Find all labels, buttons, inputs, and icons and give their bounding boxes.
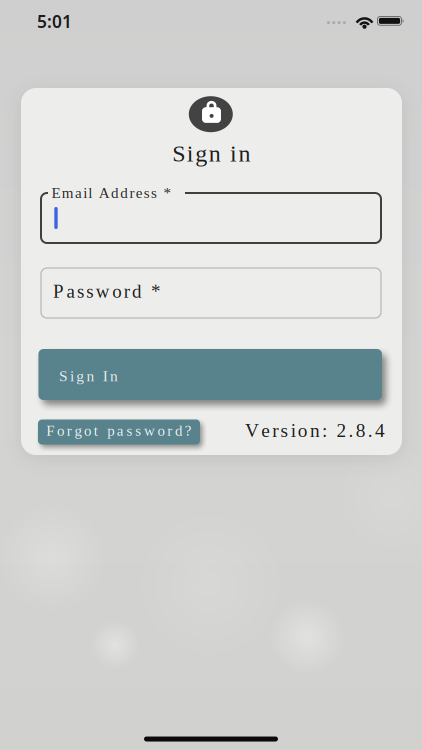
staticText: s [86, 281, 93, 302]
staticText: e [136, 185, 143, 201]
staticText: s [280, 420, 288, 441]
staticText: i [187, 140, 194, 167]
staticText: n [110, 367, 118, 384]
staticText: o [298, 420, 308, 441]
staticText: s [126, 422, 132, 439]
staticText: l [88, 185, 92, 201]
staticText: S [172, 140, 185, 167]
staticText: p [107, 422, 114, 439]
staticText: o [57, 422, 64, 439]
staticText: 4 [375, 420, 385, 441]
staticText: n [310, 420, 320, 441]
staticText: e [261, 420, 270, 441]
staticText: r [124, 281, 130, 302]
button[interactable]: S [38, 349, 382, 400]
button[interactable]: E [41, 193, 381, 243]
staticText: w [96, 281, 110, 302]
staticText: d [175, 422, 182, 439]
staticText: a [66, 281, 74, 302]
staticText: A [99, 185, 110, 201]
staticText: I [103, 367, 108, 384]
staticText: d [132, 281, 141, 302]
button[interactable]: F [38, 419, 200, 444]
staticText: 8 [356, 420, 366, 441]
staticText: r [129, 185, 134, 201]
staticText: d [120, 185, 128, 201]
staticText: * [151, 281, 160, 302]
staticText: F [46, 422, 54, 439]
staticText: S [59, 367, 68, 384]
staticText: s [77, 281, 84, 302]
staticText: s [144, 185, 150, 201]
staticText: i [230, 140, 237, 167]
staticText: P [53, 281, 64, 302]
staticText: r [272, 420, 278, 441]
staticText: g [76, 367, 84, 384]
staticText: o [112, 281, 121, 302]
staticText: n [86, 367, 94, 384]
staticText: . [348, 420, 353, 441]
staticText: w [144, 422, 155, 439]
staticText: d [111, 185, 119, 201]
staticText: t [94, 422, 98, 439]
staticText: r [167, 422, 172, 439]
staticText: r [67, 422, 72, 439]
staticText: n [238, 140, 250, 167]
staticText: g [74, 422, 81, 439]
staticText: a [117, 422, 124, 439]
button[interactable]: P [41, 268, 381, 318]
staticText: m [62, 185, 74, 201]
staticText: * [163, 185, 171, 201]
staticText: a [75, 185, 82, 201]
staticText: s [151, 185, 157, 201]
staticText: . [368, 420, 373, 441]
staticText: s [135, 422, 141, 439]
staticText: o [158, 422, 165, 439]
staticText: i [83, 185, 87, 201]
staticText: : [322, 420, 327, 441]
staticText: o [84, 422, 91, 439]
staticText: i [70, 367, 74, 384]
staticText: ? [185, 422, 192, 439]
staticText: 5:01 [37, 10, 72, 33]
staticText: n [209, 140, 221, 167]
staticText: E [51, 185, 60, 201]
staticText: V [245, 420, 259, 441]
staticText: 2 [336, 420, 346, 441]
staticText: i [291, 420, 296, 441]
staticText: g [195, 140, 207, 167]
